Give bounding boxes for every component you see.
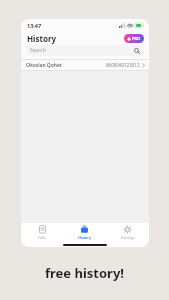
button[interactable]: Search bbox=[26, 45, 144, 56]
staticText: Okoslan Qohet bbox=[26, 62, 62, 69]
staticText: PRO bbox=[132, 36, 141, 41]
button[interactable]: Settings bbox=[106, 223, 149, 242]
staticText: Calls bbox=[38, 235, 46, 240]
button[interactable]: Okoslan Qohet bbox=[21, 60, 149, 70]
staticText: Search bbox=[30, 47, 46, 54]
button[interactable]: Calls bbox=[21, 223, 63, 242]
other: Search bbox=[134, 48, 140, 54]
staticText: 8600040123012 bbox=[106, 62, 140, 68]
button[interactable]: PRO bbox=[124, 34, 144, 43]
staticText: 13:47 bbox=[27, 22, 42, 29]
staticText: History bbox=[78, 235, 91, 240]
staticText: free history! bbox=[0, 264, 169, 282]
button[interactable]: History bbox=[63, 223, 106, 242]
staticText: Settings bbox=[121, 235, 135, 240]
staticText: History bbox=[27, 33, 57, 44]
